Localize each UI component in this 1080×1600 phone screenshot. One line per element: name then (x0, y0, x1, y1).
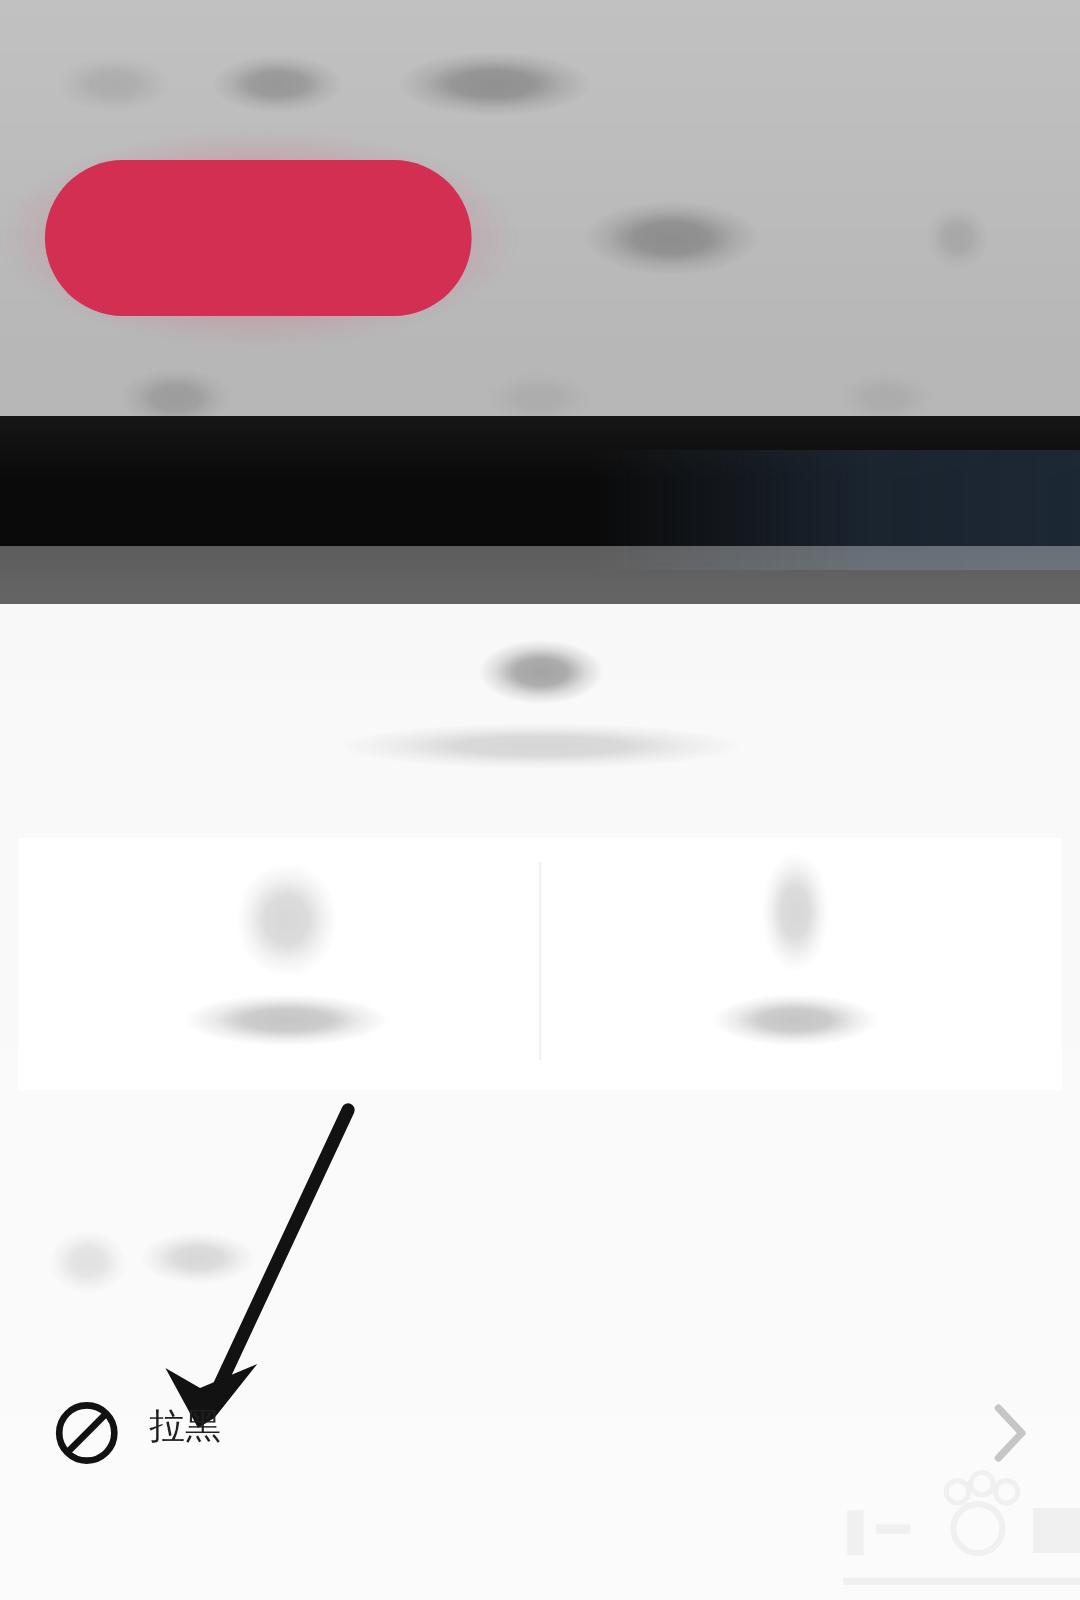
button[interactable]: Option two (540, 838, 1080, 1090)
button[interactable]: 更多 (0, 1182, 1080, 1282)
staticText: 拉黑 (149, 1403, 221, 1448)
button[interactable]: 拉黑 (0, 1370, 1080, 1480)
button[interactable]: Option one (0, 838, 540, 1090)
